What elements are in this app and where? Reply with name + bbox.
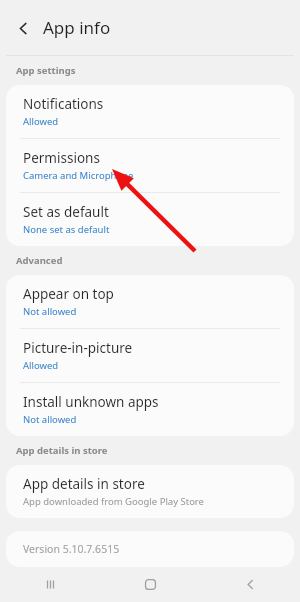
staticText: Allowed [23,359,59,372]
button[interactable]: Picture-in-picture [6,329,294,383]
staticText: Camera and Microphone [23,169,134,182]
button[interactable]: Appear on top [6,275,294,329]
button[interactable]: Version 5.10.7.6515 [6,531,294,567]
button[interactable]: Notifications [6,85,294,139]
button[interactable]: Permissions [6,139,294,193]
staticText: Install unknown apps [23,393,159,411]
button[interactable]: Set as default [6,193,294,246]
staticText: App downloaded from Google Play Store [23,495,204,508]
staticText: Picture-in-picture [23,339,133,357]
staticText: None set as default [23,223,110,236]
staticText: App details in store [23,475,145,493]
button[interactable]: Recent apps [0,567,100,602]
staticText: Version 5.10.7.6515 [23,542,120,556]
button[interactable]: Install unknown apps [6,383,294,436]
staticText: App details in store [16,444,108,457]
staticText: App settings [16,64,76,77]
button[interactable]: Navigate up [8,13,38,43]
button[interactable]: Home [100,567,200,602]
staticText: Advanced [16,254,63,267]
button[interactable]: Back [200,567,300,602]
staticText: Set as default [23,203,109,221]
staticText: Allowed [23,115,59,128]
staticText: Appear on top [23,285,114,303]
staticText: Not allowed [23,305,77,318]
staticText: App info [43,16,111,39]
staticText: Notifications [23,95,104,113]
staticText: Permissions [23,149,100,167]
staticText: Not allowed [23,413,77,426]
button[interactable]: App details in store [6,465,294,518]
